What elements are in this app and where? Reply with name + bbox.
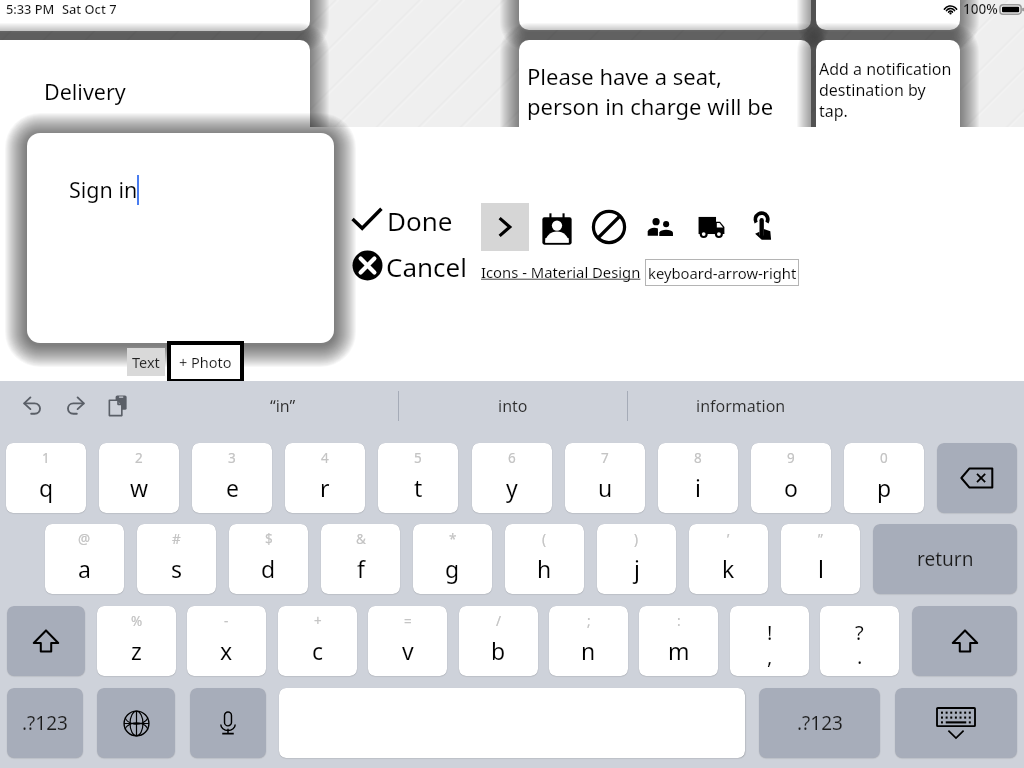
staticText: 5 — [414, 449, 422, 467]
button[interactable]: 0 — [844, 443, 924, 513]
staticText: x — [220, 635, 233, 666]
button[interactable]: Text — [127, 348, 165, 376]
button[interactable]: + Photo — [167, 341, 244, 383]
button[interactable]: ) — [597, 524, 676, 594]
button[interactable]: 4 — [285, 443, 365, 513]
button[interactable] — [0, 0, 310, 31]
button[interactable]: touch app — [741, 203, 789, 251]
staticText: d — [261, 553, 276, 584]
button[interactable] — [816, 0, 960, 30]
button[interactable]: block — [585, 203, 633, 251]
button[interactable]: mic — [190, 688, 266, 758]
button[interactable]: shift — [912, 606, 1017, 676]
button[interactable]: into — [399, 391, 626, 421]
button[interactable]: people — [637, 203, 685, 251]
button[interactable]: / — [459, 606, 538, 676]
staticText: i — [695, 472, 701, 503]
button[interactable]: 6 — [472, 443, 552, 513]
staticText: k — [722, 553, 735, 584]
button[interactable]: + — [278, 606, 357, 676]
staticText: Cancel — [386, 249, 467, 281]
staticText: information — [696, 395, 786, 417]
button[interactable]: Redo — [60, 391, 90, 421]
staticText: 1 — [42, 449, 50, 467]
button[interactable]: = — [368, 606, 447, 676]
button[interactable]: 1 — [6, 443, 86, 513]
button[interactable]: 5 — [378, 443, 458, 513]
button[interactable]: - — [187, 606, 266, 676]
button[interactable]: “in” — [170, 391, 396, 421]
button[interactable]: keyboard-arrow-right — [645, 259, 799, 286]
button[interactable]: Undo — [18, 391, 48, 421]
button[interactable]: 7 — [565, 443, 645, 513]
button[interactable]: # — [137, 524, 216, 594]
staticText: 9 — [787, 449, 795, 467]
button[interactable]: backspace — [937, 443, 1017, 513]
staticText: Please have a seat, person in charge wil… — [527, 61, 774, 153]
button[interactable]: ’ — [689, 524, 768, 594]
staticText: ? — [855, 619, 864, 646]
button[interactable] — [519, 0, 811, 30]
staticText: 3 — [228, 449, 236, 467]
button[interactable]: ; — [549, 606, 628, 676]
staticText: . — [857, 643, 863, 670]
staticText: m — [668, 635, 690, 666]
staticText: z — [131, 635, 142, 666]
staticText: keyboard-arrow-right — [648, 263, 797, 283]
button[interactable]: Done — [352, 203, 453, 235]
button[interactable]: ” — [781, 524, 860, 594]
staticText: 0 — [880, 449, 888, 467]
button[interactable]: Delivery — [0, 40, 310, 170]
button[interactable]: 2 — [99, 443, 179, 513]
staticText: return — [917, 546, 974, 572]
button[interactable]: Add a notification destination by tap. — [816, 40, 960, 170]
button[interactable]: ( — [505, 524, 584, 594]
staticText: Delivery — [44, 77, 126, 106]
button[interactable]: Please have a seat, person in charge wil… — [519, 40, 811, 170]
staticText: v — [402, 635, 414, 666]
button[interactable]: Sign in — [27, 133, 334, 343]
staticText: - — [224, 612, 229, 630]
button[interactable]: 3 — [192, 443, 272, 513]
staticText: ) — [634, 530, 639, 548]
staticText: ” — [818, 530, 823, 548]
button[interactable]: $ — [229, 524, 308, 594]
staticText: g — [445, 553, 460, 584]
staticText: , — [767, 643, 773, 670]
staticText: into — [498, 395, 528, 417]
staticText: l — [818, 553, 824, 584]
button[interactable]: information — [628, 391, 854, 421]
button[interactable]: Paste — [103, 391, 133, 421]
staticText: @ — [78, 530, 91, 548]
button[interactable]: Cancel — [352, 249, 467, 281]
button[interactable]: return — [873, 524, 1017, 594]
button[interactable]: shift — [7, 606, 85, 676]
staticText: ’ — [727, 530, 730, 548]
button[interactable]: local shipping — [689, 203, 737, 251]
button[interactable]: account box — [533, 203, 581, 251]
button[interactable]: @ — [45, 524, 124, 594]
staticText: f — [357, 553, 365, 584]
button[interactable]: & — [321, 524, 400, 594]
button[interactable]: dismiss — [895, 688, 1017, 758]
button[interactable]: .?123 — [7, 688, 83, 758]
button[interactable]: globe — [97, 688, 175, 758]
button[interactable]: .?123 — [759, 688, 880, 758]
staticText: y — [506, 472, 518, 503]
staticText: Icons - Material Design — [481, 262, 643, 282]
staticText: / — [496, 612, 502, 630]
button[interactable]: : — [639, 606, 718, 676]
button[interactable]: keyboard arrow right — [481, 203, 529, 251]
button[interactable]: % — [97, 606, 176, 676]
button[interactable]: ! — [730, 606, 809, 676]
staticText: r — [320, 472, 330, 503]
button[interactable]: ? — [820, 606, 899, 676]
button[interactable]: 8 — [658, 443, 738, 513]
staticText: 5:33 PM — [6, 0, 55, 17]
button[interactable]: Icons - Material Design — [481, 259, 643, 285]
staticText: .?123 — [797, 710, 843, 736]
button[interactable]: * — [413, 524, 492, 594]
button[interactable]: 9 — [751, 443, 831, 513]
staticText: s — [171, 553, 183, 584]
